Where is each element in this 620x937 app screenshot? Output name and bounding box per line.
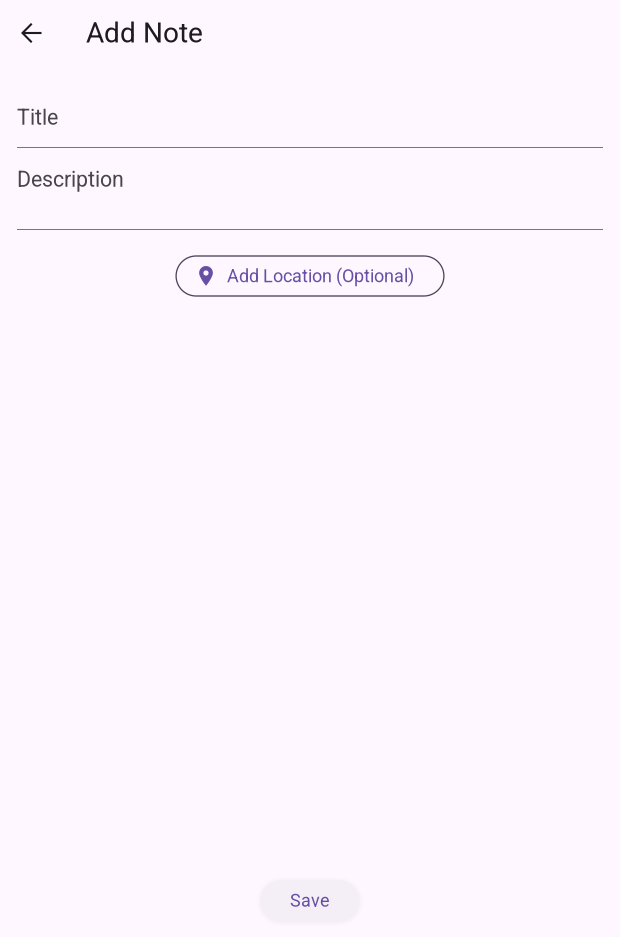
staticText: Add Note [86, 17, 203, 49]
button[interactable]: Save [260, 880, 359, 921]
staticText: Title [17, 105, 58, 130]
button[interactable]: Back [8, 9, 56, 57]
button[interactable]: Add Location (Optional) [176, 256, 444, 296]
staticText: Save [290, 890, 330, 911]
staticText: Description [17, 167, 124, 192]
staticText: Add Location (Optional) [227, 265, 414, 287]
